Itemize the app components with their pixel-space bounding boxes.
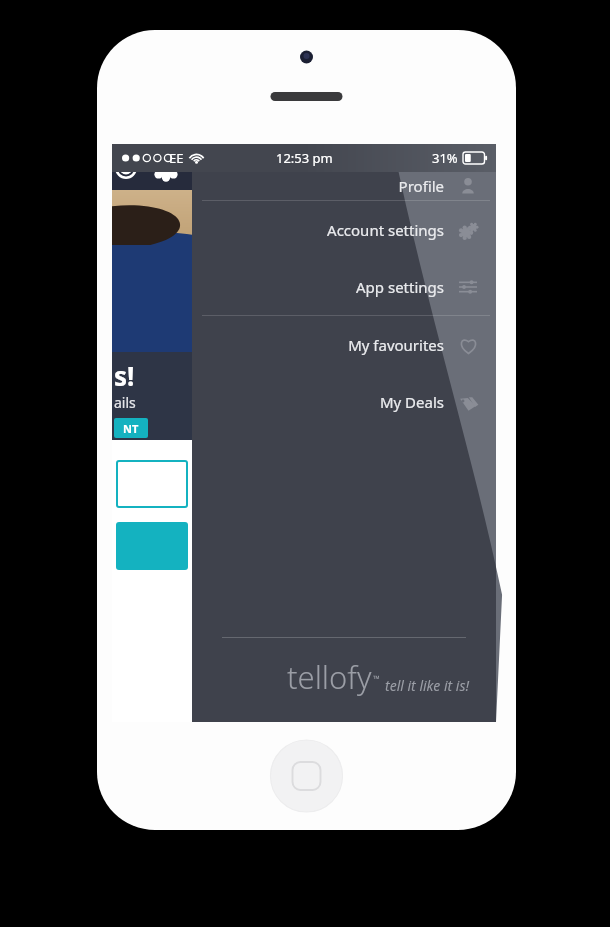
staticText: s! <box>114 358 135 393</box>
staticText: ails <box>114 393 136 412</box>
staticText: EE <box>169 149 184 167</box>
button[interactable]: My Deals <box>192 373 496 430</box>
button[interactable]: App settings <box>192 258 496 315</box>
button[interactable]: Profile <box>192 172 496 200</box>
staticText: Profile <box>398 176 444 196</box>
button[interactable] <box>116 460 188 508</box>
staticText: tell it like it is! <box>385 676 470 695</box>
staticText: 31% <box>432 149 458 167</box>
staticText: ™ <box>373 672 380 684</box>
button[interactable]: NT <box>114 418 148 438</box>
button[interactable]: Account settings <box>192 201 496 258</box>
staticText: My Deals <box>379 392 444 412</box>
staticText: App settings <box>356 277 444 297</box>
staticText: My favourites <box>348 335 444 355</box>
staticText: Account settings <box>327 220 444 240</box>
staticText: tellofy <box>287 656 372 698</box>
button[interactable]: My favourites <box>192 316 496 373</box>
button[interactable] <box>116 522 188 570</box>
staticText: 12:53 pm <box>276 149 333 167</box>
staticText: NT <box>123 421 139 436</box>
